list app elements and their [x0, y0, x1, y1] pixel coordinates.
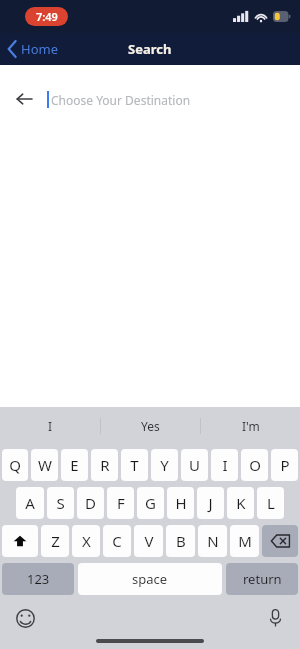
button[interactable]: Backspace: [262, 525, 298, 557]
staticText: 7:49: [36, 9, 58, 24]
button[interactable]: E: [61, 449, 88, 481]
staticText: K: [236, 493, 246, 513]
button[interactable]: Back: [10, 85, 38, 113]
staticText: D: [85, 493, 96, 513]
staticText: S: [56, 493, 65, 513]
staticText: 123: [27, 570, 50, 588]
button[interactable]: J: [197, 487, 224, 519]
staticText: Search: [128, 40, 172, 58]
button[interactable]: Q: [2, 449, 28, 481]
staticText: C: [112, 531, 122, 551]
button[interactable]: N: [198, 525, 227, 557]
button[interactable]: V: [134, 525, 163, 557]
button[interactable]: space: [78, 563, 222, 595]
button[interactable]: C: [103, 525, 131, 557]
staticText: W: [38, 455, 52, 475]
button[interactable]: I: [0, 407, 100, 444]
staticText: N: [207, 531, 219, 551]
staticText: U: [189, 455, 200, 475]
staticText: Yes: [141, 418, 160, 434]
staticText: I: [48, 418, 53, 434]
button[interactable]: I'm: [201, 407, 300, 444]
staticText: A: [25, 493, 35, 513]
button[interactable]: M: [230, 525, 259, 557]
button[interactable]: L: [257, 487, 284, 519]
staticText: G: [145, 493, 156, 513]
button[interactable]: Home: [0, 33, 66, 65]
staticText: space: [132, 570, 168, 588]
staticText: Z: [51, 531, 60, 551]
staticText: H: [175, 493, 187, 513]
button[interactable]: U: [181, 449, 208, 481]
button[interactable]: W: [31, 449, 58, 481]
staticText: L: [267, 493, 275, 513]
button[interactable]: S: [47, 487, 74, 519]
button[interactable]: T: [121, 449, 148, 481]
staticText: Choose Your Destination: [51, 92, 191, 108]
staticText: B: [176, 531, 186, 551]
button[interactable]: K: [227, 487, 254, 519]
button[interactable]: R: [91, 449, 118, 481]
staticText: R: [100, 455, 110, 475]
button[interactable]: Choose Your Destination: [47, 91, 290, 108]
button[interactable]: P: [271, 449, 298, 481]
button[interactable]: X: [72, 525, 100, 557]
button[interactable]: Y: [151, 449, 178, 481]
button[interactable]: Z: [41, 525, 69, 557]
staticText: E: [70, 455, 79, 475]
button[interactable]: B: [166, 525, 195, 557]
staticText: F: [117, 493, 125, 513]
button[interactable]: Yes: [101, 407, 200, 444]
staticText: T: [130, 455, 139, 475]
staticText: O: [249, 455, 261, 475]
staticText: Q: [9, 455, 21, 475]
staticText: P: [280, 455, 290, 475]
staticText: Home: [21, 40, 58, 58]
button[interactable]: D: [77, 487, 104, 519]
button[interactable]: A: [16, 487, 44, 519]
button[interactable]: return: [226, 563, 298, 595]
button[interactable]: Emoji: [12, 605, 38, 631]
staticText: Y: [160, 455, 169, 475]
button[interactable]: G: [137, 487, 164, 519]
staticText: J: [208, 493, 213, 513]
staticText: M: [238, 531, 252, 551]
button[interactable]: Shift: [2, 525, 38, 557]
staticText: return: [243, 570, 282, 588]
button[interactable]: H: [167, 487, 194, 519]
button[interactable]: Dictate: [262, 605, 288, 631]
staticText: X: [82, 531, 91, 551]
button[interactable]: O: [241, 449, 268, 481]
staticText: I: [222, 455, 228, 475]
button[interactable]: 123: [2, 563, 74, 595]
staticText: V: [144, 531, 154, 551]
staticText: I'm: [242, 418, 260, 434]
button[interactable]: F: [107, 487, 134, 519]
button[interactable]: I: [211, 449, 238, 481]
